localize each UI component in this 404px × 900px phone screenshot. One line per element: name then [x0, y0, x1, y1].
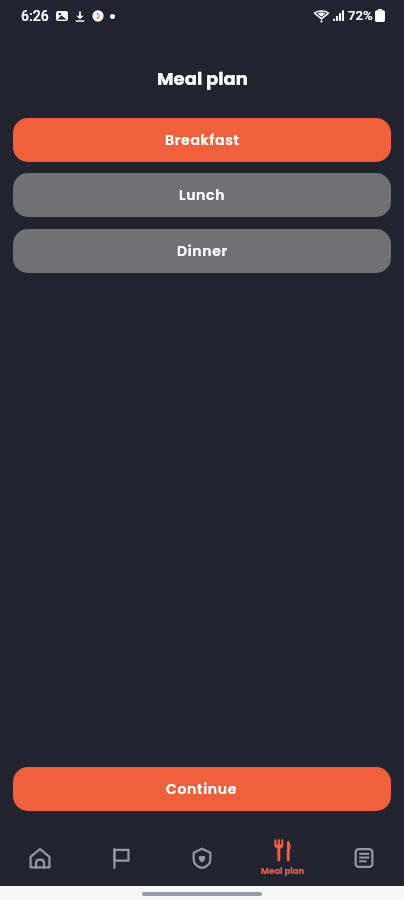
button[interactable]: Lunch [13, 173, 391, 217]
staticText: 6:26 [21, 8, 49, 24]
staticText: Lunch [179, 185, 226, 205]
staticText: Continue [166, 779, 238, 799]
button[interactable]: Health [161, 830, 242, 886]
button[interactable]: Continue [13, 767, 391, 811]
staticText: Meal plan [157, 66, 248, 91]
button[interactable]: Dinner [13, 229, 391, 273]
staticText: 72% [348, 8, 373, 23]
button[interactable]: Home [0, 830, 80, 886]
button[interactable]: Articles [323, 830, 404, 886]
staticText: Breakfast [165, 130, 240, 150]
staticText: Meal plan [261, 865, 305, 877]
staticText: Dinner [177, 241, 228, 261]
button[interactable]: Meal plan [242, 830, 323, 886]
button[interactable]: Breakfast [13, 118, 391, 162]
button[interactable]: Goals [80, 830, 161, 886]
